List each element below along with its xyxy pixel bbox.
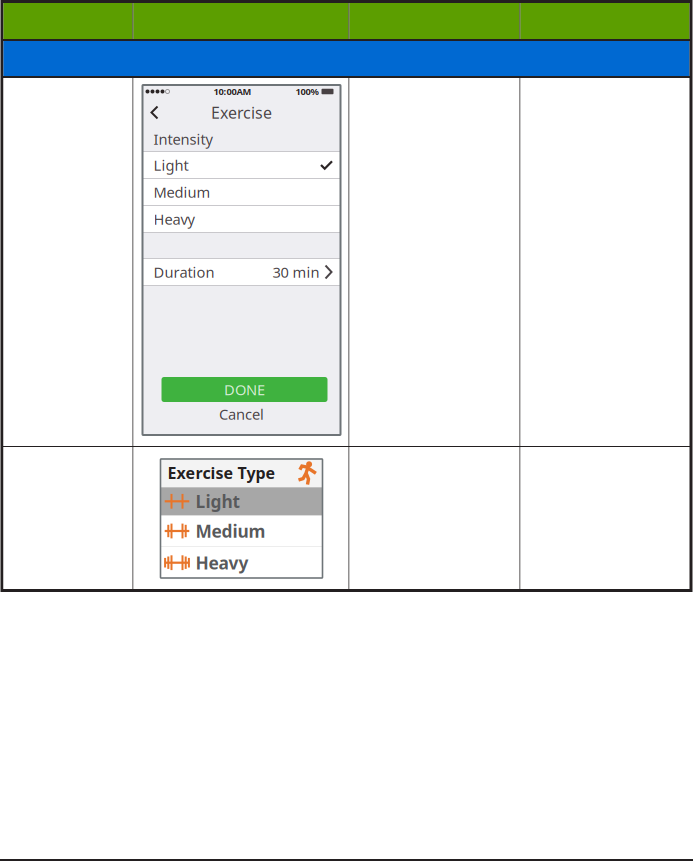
button[interactable]: Cancel xyxy=(142,402,340,426)
staticText: Intensity xyxy=(153,129,212,149)
staticText: Exercise xyxy=(211,102,272,123)
button[interactable]: Heavy xyxy=(160,547,322,579)
button[interactable]: Back xyxy=(142,100,168,124)
button[interactable]: Light xyxy=(142,152,340,178)
button[interactable]: Medium xyxy=(160,516,322,546)
staticText: Cancel xyxy=(219,404,264,424)
staticText: Duration xyxy=(153,262,214,282)
button[interactable]: Medium xyxy=(142,179,340,205)
staticText: 100% xyxy=(295,85,318,98)
staticText: Exercise Type xyxy=(167,462,275,483)
staticText: DONE xyxy=(224,380,265,399)
button[interactable]: Heavy xyxy=(142,206,340,232)
staticText: Medium xyxy=(195,519,265,542)
button[interactable]: Light xyxy=(160,487,322,515)
button[interactable]: Duration xyxy=(142,259,340,285)
staticText: Heavy xyxy=(195,551,248,574)
staticText: Medium xyxy=(153,182,210,202)
staticText: Light xyxy=(153,155,188,175)
staticText: Heavy xyxy=(153,209,194,229)
staticText: 10:00AM xyxy=(213,85,251,98)
button[interactable]: DONE xyxy=(161,377,327,402)
staticText: 30 min xyxy=(272,262,319,282)
staticText: Light xyxy=(195,490,240,513)
